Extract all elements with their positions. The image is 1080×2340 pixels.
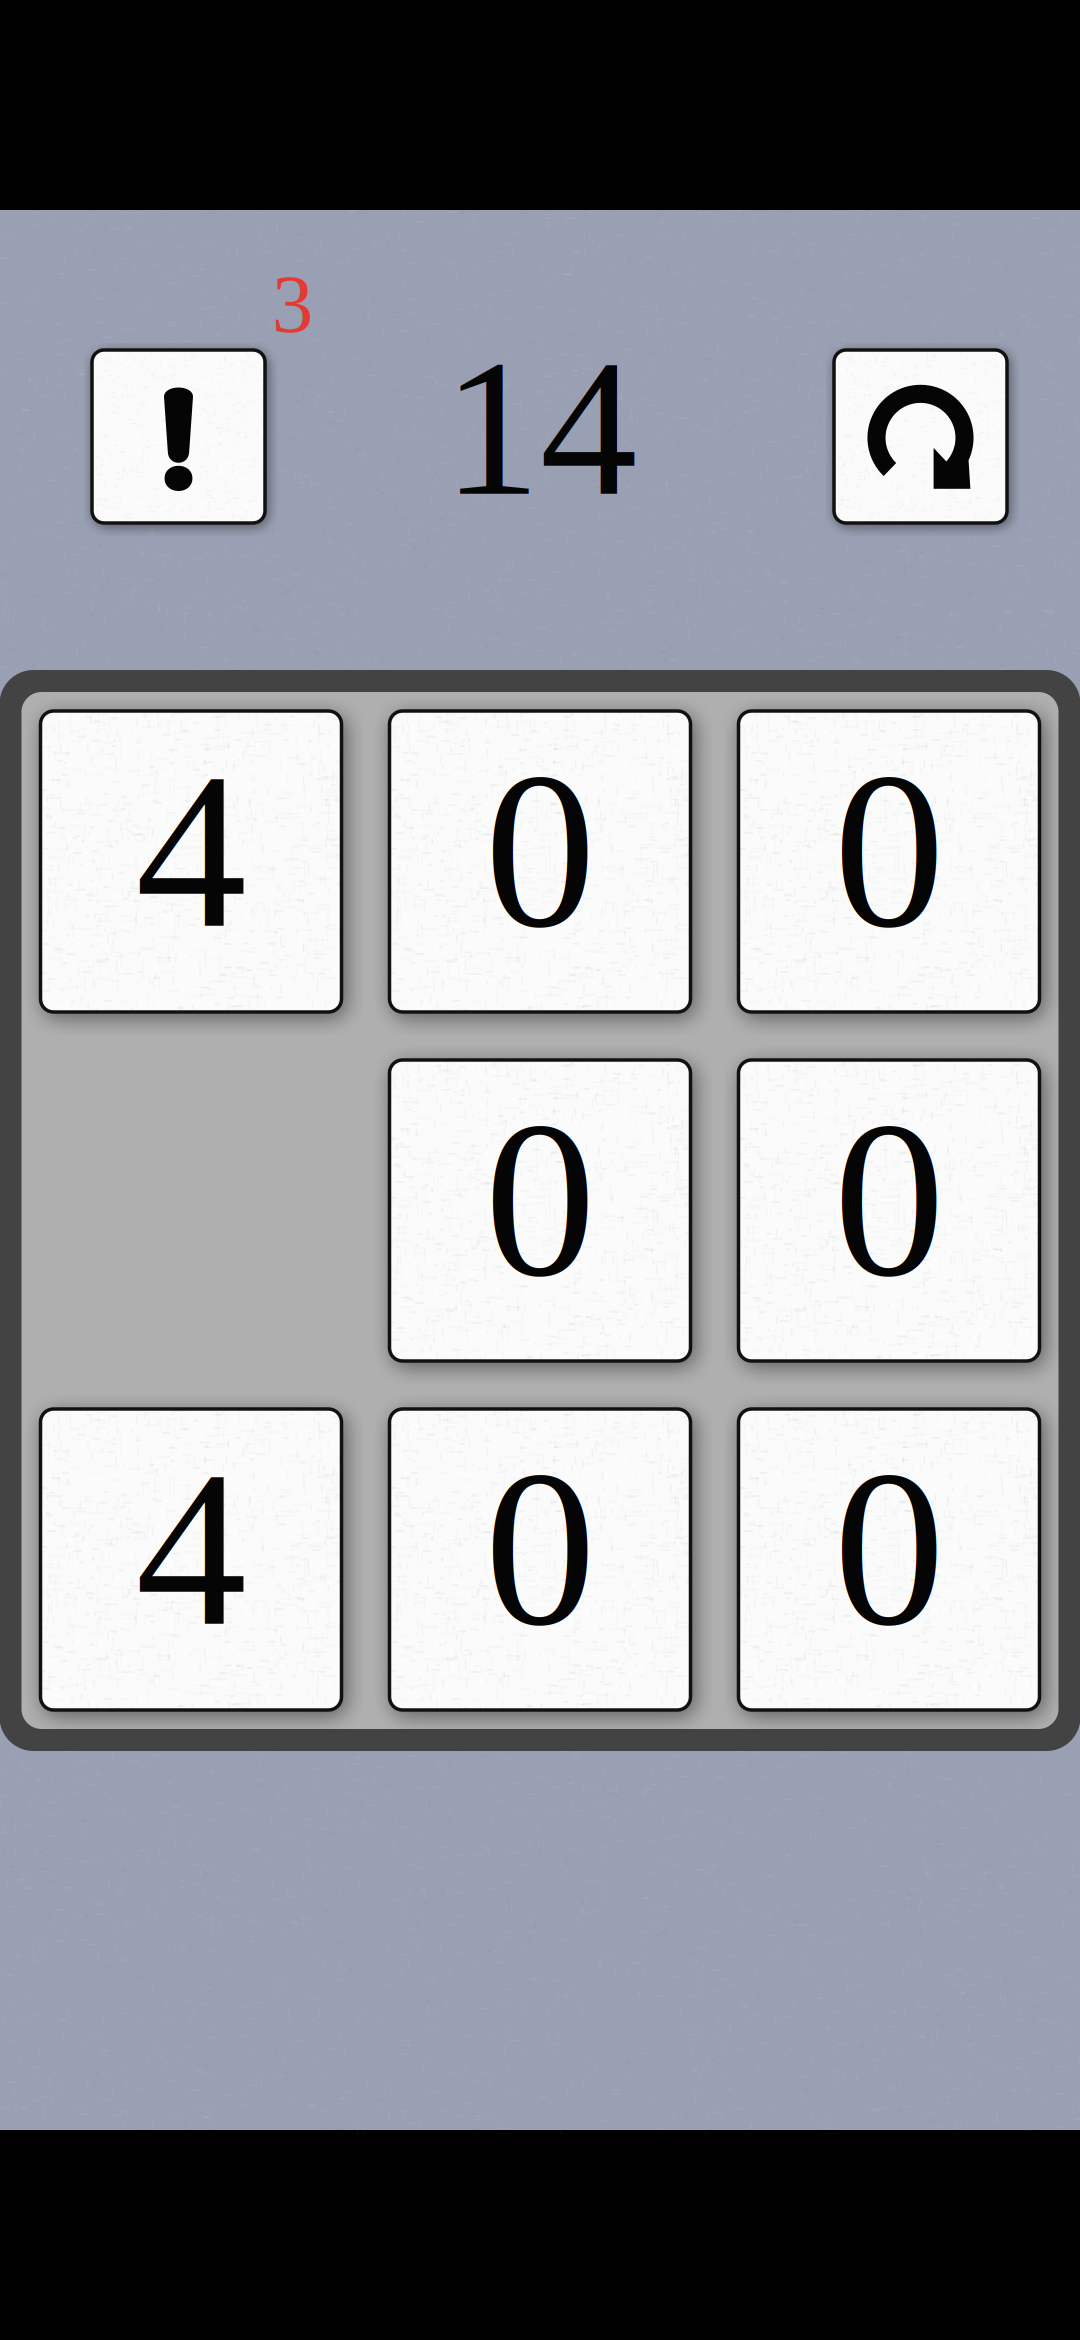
staticText: 0 — [484, 1425, 595, 1672]
button[interactable]: Restart — [834, 350, 1007, 523]
staticText: 0 — [833, 1076, 944, 1323]
staticText: 4 — [135, 727, 246, 974]
button[interactable]: 4 — [40, 1409, 341, 1710]
staticText: 0 — [484, 1076, 595, 1323]
button[interactable]: 0 — [738, 1060, 1039, 1361]
button[interactable]: 0 — [389, 1409, 690, 1710]
button[interactable]: 0 — [389, 711, 690, 1012]
staticText: 4 — [135, 1425, 246, 1672]
staticText: 0 — [484, 727, 595, 974]
staticText: 3 — [272, 258, 313, 349]
staticText: 0 — [833, 727, 944, 974]
button[interactable]: 0 — [389, 1060, 690, 1361]
staticText: 14 — [443, 320, 637, 536]
button[interactable]: 0 — [738, 1409, 1039, 1710]
staticText: 0 — [833, 1425, 944, 1672]
button[interactable]: Hint — [92, 350, 265, 523]
button[interactable]: 4 — [40, 711, 341, 1012]
button[interactable]: 0 — [738, 711, 1039, 1012]
